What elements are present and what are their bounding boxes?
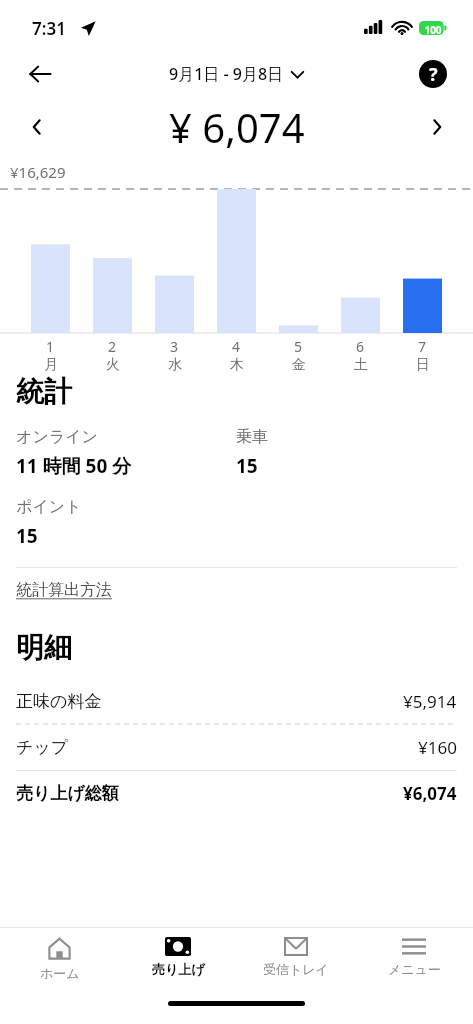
button[interactable]: 受信トレイ <box>237 928 355 990</box>
staticText: ホーム <box>40 965 80 981</box>
staticText: 5 <box>294 337 303 356</box>
staticText: 11 時間 50 分 <box>16 453 132 479</box>
staticText: 統計算出方法 <box>16 580 112 600</box>
staticText: 売り上げ総額 <box>16 783 403 804</box>
staticText: 7 <box>418 337 427 356</box>
button[interactable]: Next week <box>417 107 457 147</box>
button[interactable]: 統計算出方法 <box>16 568 457 612</box>
staticText: オンライン <box>16 427 98 447</box>
staticText: 日 <box>416 356 430 374</box>
staticText: 木 <box>230 356 244 374</box>
staticText: 6 <box>356 337 365 356</box>
button[interactable]: 9月1日 - 9月8日 <box>169 63 304 85</box>
staticText: チップ <box>16 737 418 758</box>
staticText: ? <box>429 62 438 87</box>
staticText: 火 <box>106 356 120 374</box>
staticText: 明細 <box>16 630 72 665</box>
staticText: 売り上げ <box>152 961 205 977</box>
staticText: 2 <box>108 337 117 356</box>
staticText: 100 <box>421 23 445 37</box>
button[interactable]: ホーム <box>0 928 119 990</box>
button[interactable]: Previous week <box>16 107 56 147</box>
button[interactable]: 売り上げ <box>119 928 237 990</box>
staticText: 土 <box>354 356 368 374</box>
staticText: 受信トレイ <box>263 961 329 977</box>
staticText: ¥ 6,074 <box>169 100 305 154</box>
staticText: 金 <box>292 356 306 374</box>
staticText: 7:31 <box>32 17 66 40</box>
staticText: 乗車 <box>236 427 268 447</box>
staticText: 月 <box>44 356 58 374</box>
staticText: ¥160 <box>418 736 457 759</box>
button[interactable]: 売り上げ総額 <box>16 771 457 816</box>
staticText: 正味の料金 <box>16 691 403 712</box>
staticText: ¥16,629 <box>10 162 66 182</box>
staticText: 1 <box>46 337 55 356</box>
button[interactable]: Help <box>411 52 455 96</box>
staticText: ポイント <box>16 497 82 517</box>
button[interactable]: 正味の料金 <box>16 679 457 724</box>
staticText: ¥5,914 <box>403 690 457 713</box>
button[interactable]: メニュー <box>355 928 473 990</box>
staticText: 9月1日 - 9月8日 <box>169 63 284 85</box>
staticText: メニュー <box>388 961 441 977</box>
button[interactable]: チップ <box>16 725 457 770</box>
button[interactable]: Back <box>16 50 64 98</box>
staticText: 15 <box>236 453 258 479</box>
staticText: 水 <box>168 356 182 374</box>
staticText: ¥6,074 <box>403 782 457 805</box>
staticText: 統計 <box>16 374 72 409</box>
staticText: 3 <box>170 337 179 356</box>
staticText: 4 <box>232 337 241 356</box>
staticText: 15 <box>16 523 38 549</box>
